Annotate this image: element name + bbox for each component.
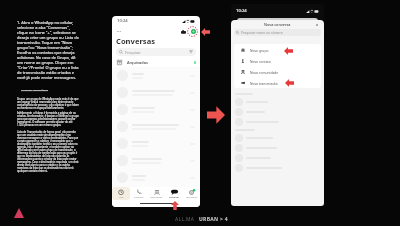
- staticText: Novo contato: [250, 59, 271, 63]
- button[interactable]: Comunidades: [148, 187, 165, 200]
- button[interactable]: Arquivadas: [112, 58, 200, 67]
- staticText: 5: [194, 60, 196, 65]
- button[interactable]: Chamadas: [130, 187, 148, 200]
- button[interactable]: [235, 107, 320, 117]
- staticText: CUIDADOS NECESSÁRIOS: [21, 89, 48, 92]
- staticText: Pesquisar: [125, 50, 141, 55]
- button[interactable]: [235, 163, 320, 173]
- staticText: Grupo: um grupo de WhatsApp nada mais é …: [17, 97, 79, 109]
- staticText: URBAN > 4: [199, 216, 228, 223]
- button[interactable]: [112, 152, 200, 169]
- button[interactable]: Nova comunidade: [234, 66, 321, 77]
- button[interactable]: [112, 135, 200, 152]
- staticText: Nova conversa: [264, 22, 291, 27]
- staticText: Conversas: [116, 36, 155, 46]
- staticText: 10:24: [236, 8, 247, 14]
- staticText: •••: [117, 29, 121, 34]
- staticText: 10:24: [117, 18, 128, 24]
- button[interactable]: [112, 84, 200, 101]
- button[interactable]: Pesquisar nome ou número: [234, 29, 321, 36]
- button[interactable]: Novo grupo: [234, 44, 321, 55]
- staticText: Comunidades: [150, 196, 163, 199]
- button[interactable]: [235, 133, 320, 143]
- button[interactable]: Nova conversa: [191, 29, 196, 34]
- staticText: Conversas: [169, 196, 179, 199]
- button[interactable]: Conversas: [165, 187, 183, 200]
- button[interactable]: [112, 118, 200, 135]
- button[interactable]: [235, 153, 320, 163]
- button[interactable]: Pesquisar: [116, 48, 196, 56]
- button[interactable]: Fechar: [315, 23, 319, 27]
- staticText: Nova transmissão: [250, 81, 278, 85]
- button[interactable]: Camera: [180, 29, 186, 35]
- button[interactable]: [112, 169, 200, 186]
- staticText: ALL.MA: [175, 216, 195, 223]
- staticText: Lista de Transmissão: de forma geral, el…: [17, 130, 79, 172]
- staticText: Infelizmente, a fulana é fornecida a pág…: [17, 111, 79, 126]
- staticText: Pesquisar nome ou número: [241, 31, 283, 35]
- button[interactable]: [235, 97, 320, 107]
- button[interactable]: Nova transmissão: [234, 77, 321, 88]
- button[interactable]: Novo contato: [234, 55, 321, 66]
- button[interactable]: [112, 101, 200, 118]
- staticText: Novo grupo: [250, 48, 269, 52]
- staticText: 1. Abra o WhatsApp no celular, selecione…: [17, 20, 79, 80]
- staticText: Atual: [119, 196, 124, 199]
- staticText: Ferramentas: [186, 196, 198, 199]
- button[interactable]: [235, 117, 320, 127]
- staticText: Arquivadas: [127, 60, 148, 65]
- staticText: Chamadas: [134, 196, 144, 199]
- button[interactable]: Atual: [112, 187, 130, 200]
- button[interactable]: Ferramentas: [183, 187, 200, 200]
- button[interactable]: [112, 67, 200, 84]
- staticText: Nova comunidade: [250, 70, 279, 74]
- button[interactable]: [235, 143, 320, 153]
